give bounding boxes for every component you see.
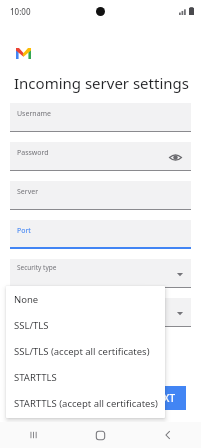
button[interactable]: Recent apps [0, 422, 67, 448]
button[interactable]: Back [134, 422, 201, 448]
staticText: Incoming server settings [14, 73, 189, 93]
button[interactable]: Security type [10, 259, 191, 288]
staticText: None [14, 293, 39, 306]
button[interactable]: None [6, 286, 165, 312]
staticText: SSL/TLS [14, 319, 49, 332]
button[interactable]: STARTTLS (accept all certificates) [6, 390, 165, 416]
staticText: NEXT [150, 391, 176, 405]
button[interactable]: SSL/TLS [6, 312, 165, 338]
staticText: Port [17, 226, 31, 236]
button[interactable]: Port [10, 220, 191, 249]
button[interactable]: Home [67, 422, 134, 448]
button[interactable]: SSL/TLS (accept all certificates) [6, 338, 165, 364]
button[interactable]: NEXT [140, 386, 186, 410]
staticText: Password [17, 148, 49, 158]
staticText: Username [17, 109, 52, 119]
staticText: SSL/TLS (accept all certificates) [14, 345, 150, 358]
button[interactable]: STARTTLS [6, 364, 165, 390]
staticText: 10:00 [10, 6, 31, 17]
staticText: STARTTLS (accept all certificates) [14, 397, 158, 410]
staticText: Server [17, 187, 39, 197]
button[interactable]: Username [10, 103, 191, 132]
staticText: Security type [17, 263, 57, 272]
button[interactable]: Password [10, 142, 191, 171]
button[interactable] [10, 298, 191, 327]
button[interactable]: Server [10, 181, 191, 210]
staticText: STARTTLS [14, 371, 57, 384]
button[interactable]: Show password [167, 149, 183, 165]
